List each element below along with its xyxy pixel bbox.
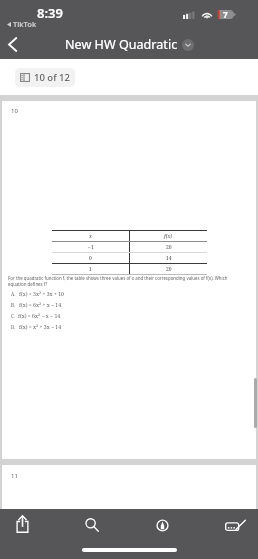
staticText: For the quadratic function f, the table … <box>8 275 246 288</box>
button[interactable]: Draw <box>143 508 181 542</box>
button[interactable]: B. <box>11 299 246 310</box>
staticText: 10 <box>11 107 18 115</box>
staticText: B. <box>11 302 16 308</box>
staticText: f(x) = 3x² + 3x + 10 <box>19 290 64 297</box>
staticText: 11 <box>11 472 18 480</box>
button[interactable]: Search <box>73 508 111 542</box>
staticText: f(x) = x² + 3x − 14 <box>19 323 62 330</box>
staticText: A. <box>11 291 16 297</box>
staticText: 10 of 12 <box>34 71 70 84</box>
staticText: f(x) <box>164 233 173 240</box>
staticText: New HW Quadratic <box>65 36 178 53</box>
staticText: D. <box>11 324 16 330</box>
button[interactable]: C. <box>11 310 246 321</box>
staticText: −1 <box>88 244 94 251</box>
staticText: x <box>89 233 92 240</box>
staticText: f(x) = 6x² + x − 14 <box>19 301 62 308</box>
staticText: 14 <box>166 255 172 262</box>
button[interactable]: A. <box>11 288 246 299</box>
button[interactable]: Markup <box>216 508 254 542</box>
staticText: 0 <box>89 255 92 262</box>
staticText: TikTok <box>13 19 37 29</box>
staticText: 8:39 <box>37 4 63 22</box>
staticText: C. <box>11 313 15 319</box>
button[interactable]: New HW Quadratic <box>61 36 198 53</box>
staticText: f(x) = 6x² − x − 14 <box>18 312 61 319</box>
button[interactable]: 10 of 12 <box>15 68 75 87</box>
button[interactable]: Share <box>3 507 41 541</box>
button[interactable]: Back <box>0 32 25 57</box>
button[interactable]: D. <box>11 321 246 332</box>
staticText: 20 <box>166 266 172 273</box>
staticText: 1 <box>89 266 92 273</box>
staticText: 7 <box>223 9 228 20</box>
staticText: 20 <box>166 244 172 251</box>
